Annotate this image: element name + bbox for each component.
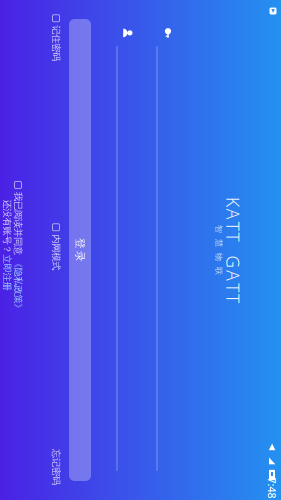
staticText: 还没有账号？ (90, 378, 144, 389)
staticText: T (112, 146, 121, 169)
button[interactable]: 登 (0, 299, 281, 321)
staticText: 内网模式 (125, 329, 161, 340)
staticText: 立即注册 (145, 378, 181, 389)
staticText: K (87, 146, 97, 169)
staticText: 《隐私政策》 (149, 367, 203, 378)
staticText: G (146, 146, 159, 169)
button[interactable]: 我已阅读并同意 (72, 367, 203, 378)
staticText: 智 (115, 167, 123, 176)
button[interactable]: 内网模式 (114, 329, 161, 340)
staticText: 我已阅读并同意 (82, 367, 145, 378)
button[interactable]: 还没有账号？ (90, 378, 181, 389)
